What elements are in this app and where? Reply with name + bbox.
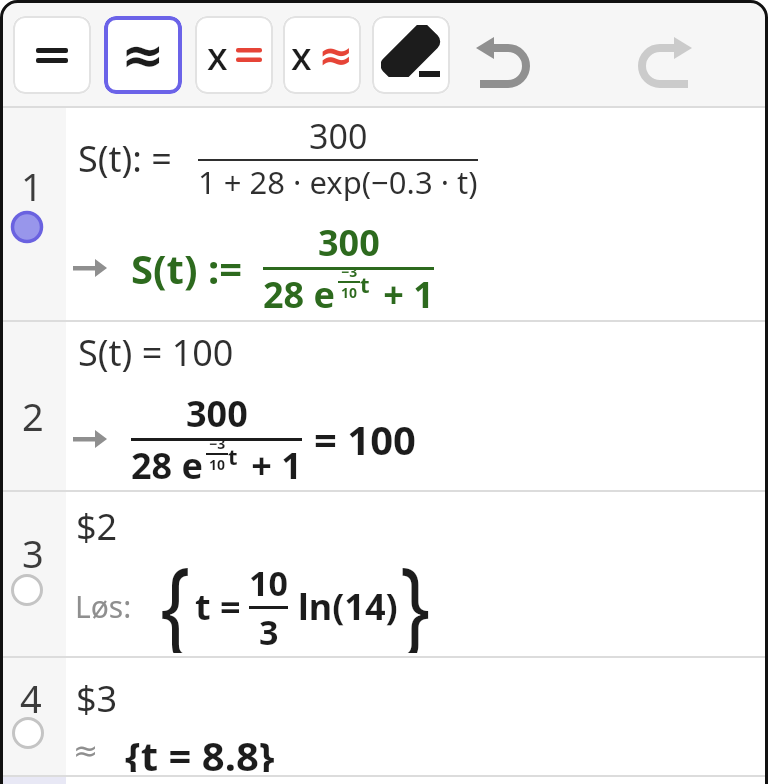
staticText: t xyxy=(360,269,370,299)
staticText: $2 xyxy=(76,502,118,551)
staticText: S(t): = xyxy=(78,134,182,183)
staticText: 300 xyxy=(309,113,368,159)
staticText: S(t) := xyxy=(131,241,253,295)
button[interactable]: S(t) = 100 xyxy=(78,328,234,372)
button[interactable] xyxy=(372,16,450,94)
staticText: t xyxy=(228,441,238,471)
staticText: { xyxy=(160,529,191,653)
staticText: $3 xyxy=(76,674,118,723)
button[interactable] xyxy=(9,209,45,245)
button[interactable]: 300 xyxy=(73,384,416,494)
staticText: 28 e xyxy=(131,441,204,490)
staticText: 300 xyxy=(318,218,380,267)
staticText: 3 xyxy=(22,527,44,579)
button[interactable] xyxy=(472,36,540,92)
staticText: −3 xyxy=(341,262,358,281)
button[interactable]: x xyxy=(291,29,354,81)
staticText: 10 xyxy=(249,560,288,606)
button[interactable] xyxy=(13,16,91,94)
staticText: + 1 xyxy=(242,441,302,490)
staticText: 1 xyxy=(21,160,43,212)
staticText: 28 e xyxy=(263,270,336,318)
button[interactable] xyxy=(10,715,46,751)
staticText: −3 xyxy=(209,434,226,453)
staticText: ≈ xyxy=(121,25,165,86)
staticText: 10 xyxy=(209,455,226,474)
button[interactable] xyxy=(9,572,45,608)
button[interactable]: Løs: xyxy=(75,560,431,652)
staticText: 10 xyxy=(341,283,358,302)
staticText: 1 + 28 · exp(−0.3 · t) xyxy=(198,161,478,203)
staticText: = 100 xyxy=(314,412,416,466)
staticText: x xyxy=(207,29,228,81)
button[interactable]: ≈ xyxy=(73,728,275,772)
button[interactable]: S(t): = xyxy=(78,110,478,206)
button[interactable]: S(t) := xyxy=(73,218,434,318)
staticText: Løs: xyxy=(75,586,132,627)
staticText: ln(14) xyxy=(298,582,398,631)
button[interactable]: x xyxy=(207,29,262,81)
button[interactable]: x xyxy=(195,16,273,94)
staticText: } xyxy=(400,529,431,653)
staticText: ≈ xyxy=(318,31,354,80)
button[interactable] xyxy=(628,36,696,92)
staticText: ≈ xyxy=(73,733,99,768)
staticText: + 1 xyxy=(374,270,434,318)
staticText: 3 xyxy=(259,609,279,652)
staticText: 300 xyxy=(186,389,248,438)
staticText: x xyxy=(291,29,312,81)
button[interactable]: x xyxy=(283,16,361,94)
staticText: S(t) = 100 xyxy=(78,328,234,372)
staticText: 4 xyxy=(20,672,42,724)
staticText: {t = 8.8} xyxy=(125,728,275,772)
staticText: 2 xyxy=(22,390,44,442)
staticText: t = xyxy=(195,582,241,631)
button[interactable]: ≈ xyxy=(104,16,182,94)
